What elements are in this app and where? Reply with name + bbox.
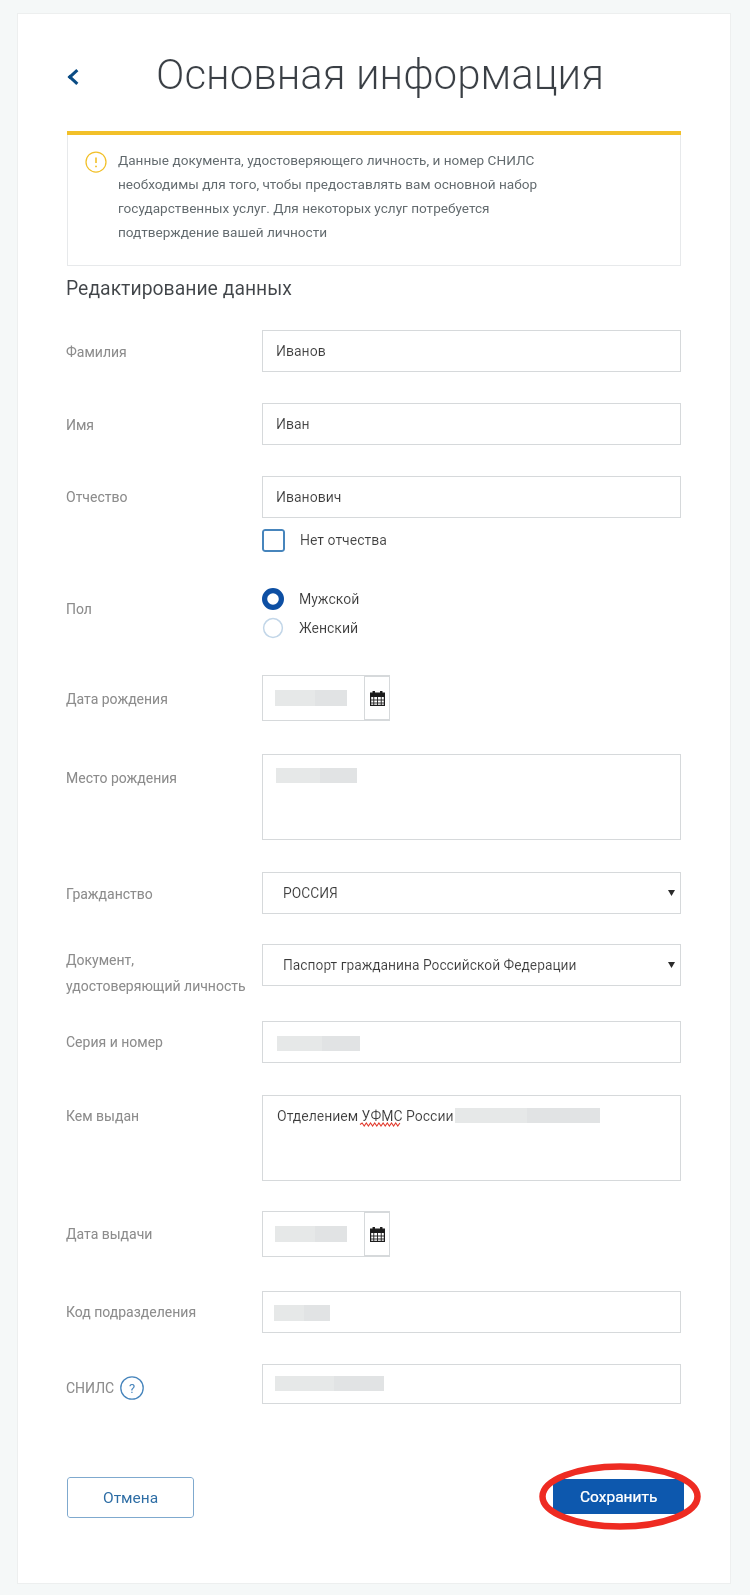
staticText: Иван	[276, 416, 310, 432]
button[interactable]: РОССИЯ	[262, 872, 681, 914]
button[interactable]: Help about СНИЛС	[120, 1376, 144, 1400]
button[interactable]: Мужской	[262, 588, 360, 610]
staticText: необходимы для того, чтобы предоставлять…	[118, 176, 538, 192]
staticText: Имя	[66, 417, 95, 433]
staticText: Данные документа, удостоверяющего личнос…	[118, 152, 535, 168]
button[interactable]	[262, 754, 681, 840]
staticText: Место рождения	[66, 770, 178, 786]
staticText: Мужской	[299, 591, 360, 607]
staticText: Пол	[66, 601, 92, 617]
staticText: СНИЛС	[66, 1380, 115, 1396]
staticText: Паспорт гражданина Российской Федерации	[283, 957, 577, 973]
staticText: Нет отчества	[300, 532, 387, 548]
staticText: Иванович	[276, 489, 342, 505]
staticText: ?	[129, 1381, 136, 1396]
staticText: Отделением УФМС России	[277, 1108, 454, 1124]
button[interactable]: Сохранить	[553, 1479, 684, 1514]
staticText: Сохранить	[580, 1488, 658, 1506]
button[interactable]: Отмена	[67, 1477, 194, 1518]
other: Choose date	[364, 1212, 390, 1256]
button[interactable]: Иван	[262, 403, 681, 445]
staticText: Отчество	[66, 489, 128, 505]
button[interactable]: Back	[52, 56, 94, 98]
staticText: удостоверяющий личность	[66, 978, 246, 994]
staticText: Отмена	[103, 1489, 159, 1507]
staticText: государственных услуг. Для некоторых усл…	[118, 200, 490, 216]
button[interactable]: Отделением УФМС России	[262, 1095, 681, 1181]
staticText: Фамилия	[66, 344, 127, 360]
staticText: Редактирование данных	[66, 277, 292, 300]
button[interactable]: Иванович	[262, 476, 681, 518]
staticText: Серия и номер	[66, 1034, 163, 1050]
staticText: Дата выдачи	[66, 1226, 153, 1242]
button[interactable]	[262, 1021, 681, 1063]
staticText: подтверждение вашей личности	[118, 224, 328, 240]
staticText: Гражданство	[66, 886, 153, 902]
staticText: Документ,	[66, 952, 135, 968]
staticText: Дата рождения	[66, 691, 168, 707]
staticText: Код подразделения	[66, 1304, 197, 1320]
button[interactable]: Иванов	[262, 330, 681, 372]
button[interactable]: Choose date	[262, 675, 390, 721]
button[interactable]	[262, 1291, 681, 1333]
staticText: РОССИЯ	[283, 885, 338, 901]
button[interactable]: Choose date	[262, 1211, 390, 1257]
button[interactable]: Паспорт гражданина Российской Федерации	[262, 944, 681, 986]
button[interactable]: Нет отчества	[262, 528, 387, 552]
button[interactable]	[262, 1364, 681, 1404]
staticText: Женский	[299, 620, 359, 636]
staticText: Иванов	[276, 343, 326, 359]
staticText: Кем выдан	[66, 1108, 140, 1124]
other: Choose date	[364, 676, 390, 720]
button[interactable]: Женский	[262, 617, 359, 639]
staticText: Основная информация	[156, 50, 605, 99]
